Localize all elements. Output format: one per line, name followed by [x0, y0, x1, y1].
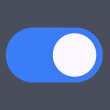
button[interactable]: On [6, 27, 103, 82]
